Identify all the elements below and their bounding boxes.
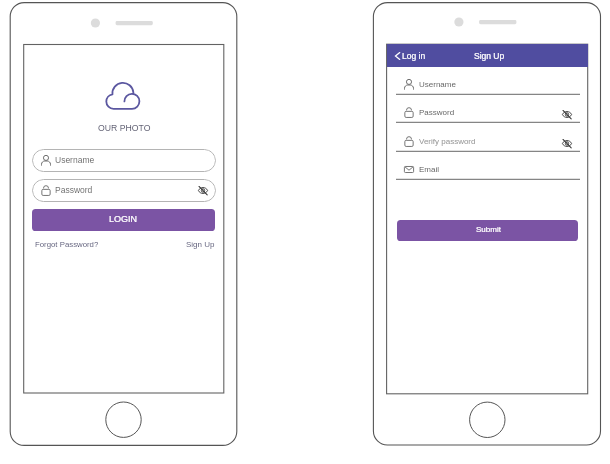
- staticText: Email: [419, 165, 440, 174]
- staticText: Sign Up: [474, 51, 505, 60]
- staticText: OUR PHOTO: [98, 123, 151, 133]
- button[interactable]: Email: [396, 152, 580, 180]
- button[interactable]: Password: [396, 95, 580, 123]
- staticText: Password: [55, 185, 93, 194]
- button[interactable]: Submit: [397, 220, 578, 241]
- staticText: Username: [419, 80, 456, 89]
- button[interactable]: Password: [32, 179, 216, 202]
- staticText: Username: [55, 155, 95, 164]
- staticText: Verify password: [419, 137, 476, 146]
- staticText: Forgot Password?: [35, 240, 99, 249]
- button[interactable]: Log in: [395, 44, 426, 67]
- button[interactable]: Verify password: [396, 124, 580, 152]
- staticText: Sign Up: [186, 240, 215, 249]
- button[interactable]: Username: [32, 149, 216, 172]
- button[interactable]: Show password: [558, 134, 576, 152]
- button[interactable]: Forgot Password?: [35, 240, 99, 249]
- staticText: Password: [419, 108, 455, 117]
- button[interactable]: Show password: [194, 181, 212, 199]
- button[interactable]: Sign Up: [186, 240, 215, 249]
- button[interactable]: Show password: [558, 105, 576, 123]
- button[interactable]: LOGIN: [32, 209, 215, 231]
- staticText: Submit: [476, 225, 501, 234]
- staticText: LOGIN: [109, 214, 138, 224]
- button[interactable]: Username: [396, 67, 580, 95]
- staticText: Log in: [402, 51, 426, 60]
